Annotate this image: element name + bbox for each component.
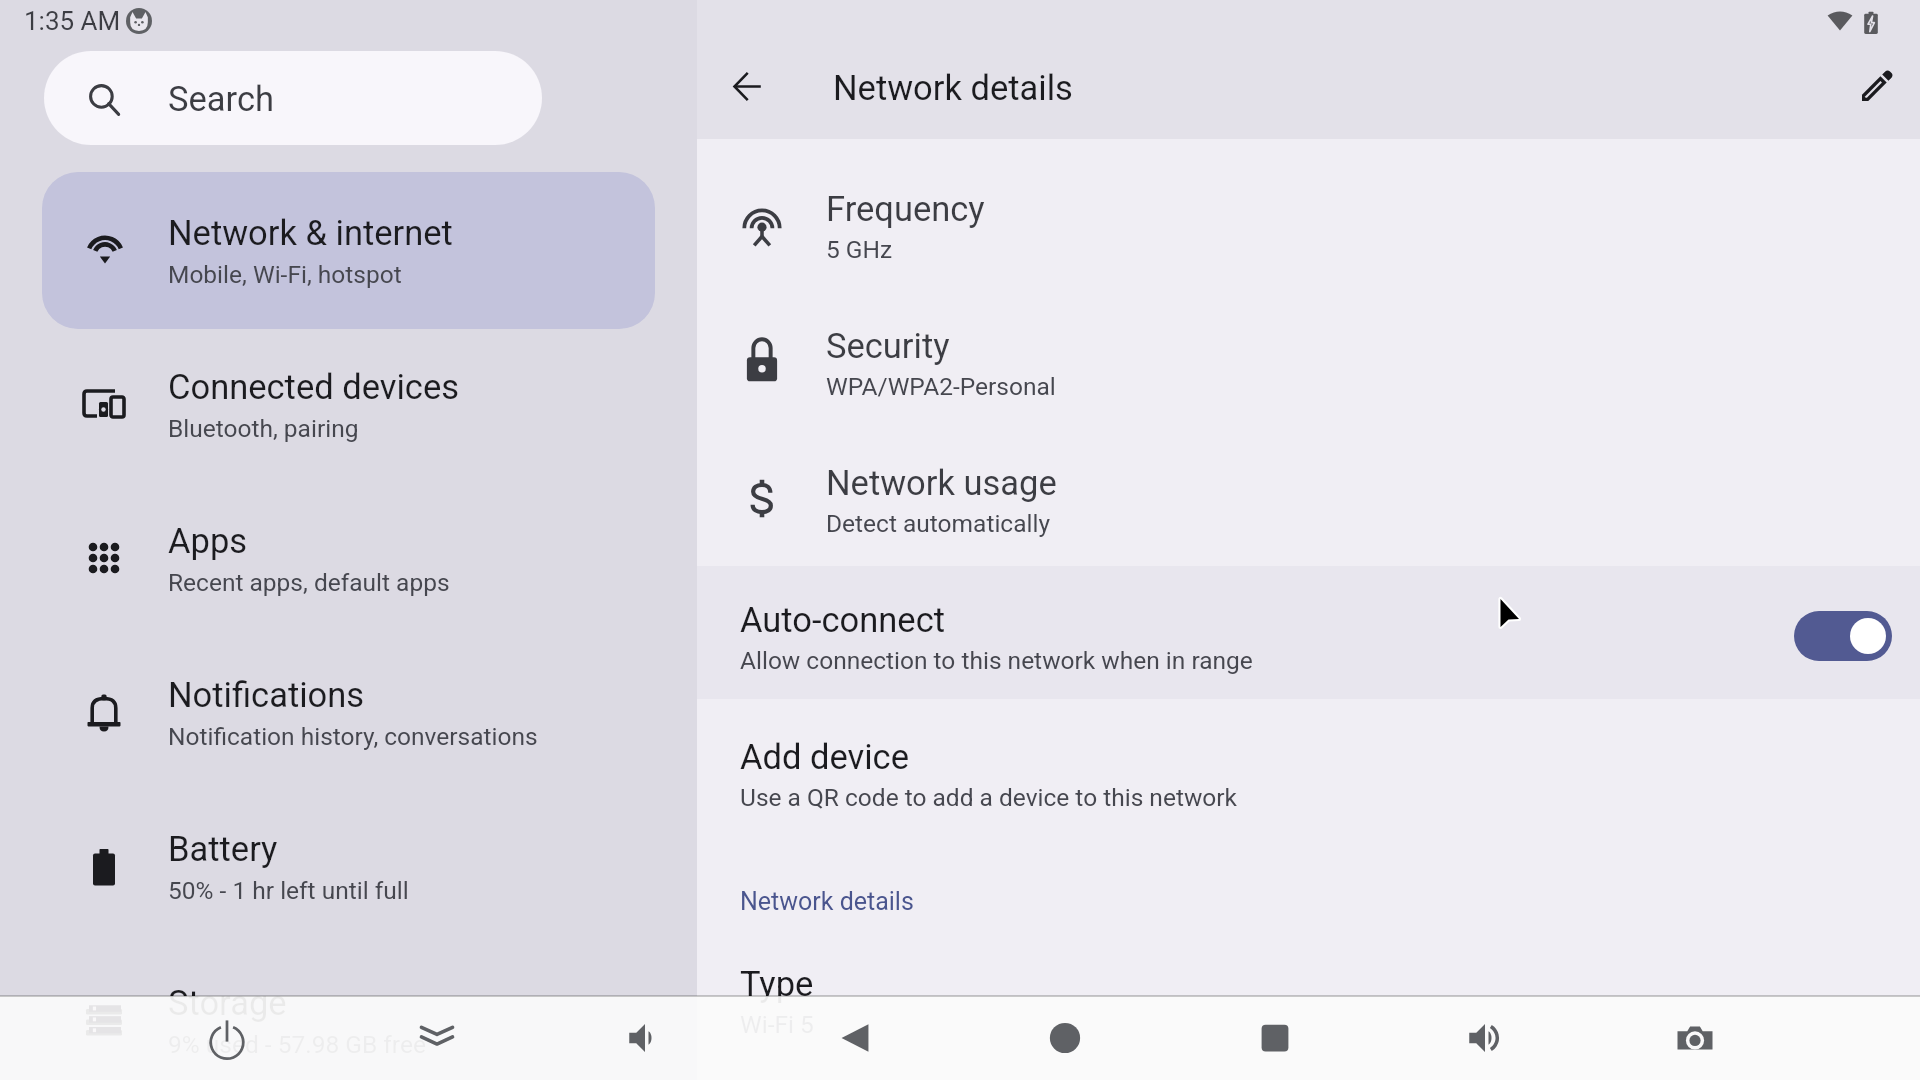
button[interactable]: Back <box>813 996 897 1080</box>
staticText: Network & internet <box>168 213 453 253</box>
staticText: Wi-Fi 5 <box>740 1010 814 1039</box>
staticText: 1:35 AM <box>24 6 121 36</box>
button[interactable]: Search <box>44 51 542 145</box>
button[interactable]: Network details <box>740 880 920 920</box>
button[interactable]: Collapse <box>395 996 479 1080</box>
staticText: Allow connection to this network when in… <box>740 646 1253 675</box>
staticText: Connected devices <box>168 367 459 407</box>
button[interactable]: Auto-connect <box>697 566 1920 699</box>
staticText: Search <box>168 79 274 119</box>
staticText: 5 GHz <box>826 235 893 264</box>
button[interactable]: Auto-connect, on <box>1794 611 1892 661</box>
button[interactable]: Recents <box>1233 996 1317 1080</box>
button[interactable]: Frequency <box>697 150 1920 270</box>
staticText: Type <box>740 964 814 1004</box>
button[interactable]: Edit <box>1841 50 1913 122</box>
button[interactable]: Volume up <box>1443 996 1527 1080</box>
staticText: Network details <box>740 887 914 916</box>
staticText: Auto-connect <box>740 600 945 640</box>
button[interactable]: Connected devices <box>42 326 655 483</box>
staticText: Storage <box>168 983 287 1023</box>
staticText: Detect automatically <box>826 509 1051 538</box>
button[interactable]: Screenshot <box>1653 996 1737 1080</box>
staticText: Use a QR code to add a device to this ne… <box>740 783 1238 812</box>
staticText: Add device <box>740 737 909 777</box>
staticText: 9% used - 57.98 GB free <box>168 1030 426 1059</box>
button[interactable]: Storage <box>42 942 655 1080</box>
staticText: Mobile, Wi-Fi, hotspot <box>168 260 402 289</box>
staticText: Bluetooth, pairing <box>168 414 359 443</box>
staticText: Battery <box>168 829 278 869</box>
button[interactable]: Network & internet <box>42 172 655 329</box>
button[interactable]: Back <box>712 51 783 122</box>
staticText: Frequency <box>826 189 985 229</box>
button[interactable]: Battery <box>42 788 655 945</box>
staticText: Network usage <box>826 463 1057 503</box>
button[interactable]: Menu <box>63 996 147 1080</box>
button[interactable]: Network usage <box>697 424 1920 544</box>
button[interactable]: Notifications <box>42 634 655 791</box>
button[interactable]: Home <box>1023 996 1107 1080</box>
button[interactable]: Apps <box>42 480 655 637</box>
staticText: Network details <box>833 68 1073 108</box>
button[interactable]: Add device <box>697 716 1920 831</box>
staticText: Apps <box>168 521 248 561</box>
staticText: 50% - 1 hr left until full <box>168 876 409 905</box>
staticText: Security <box>826 326 950 366</box>
button[interactable]: Volume down <box>603 996 687 1080</box>
staticText: WPA/WPA2-Personal <box>826 372 1056 401</box>
staticText: Notification history, conversations <box>168 722 538 751</box>
staticText: Recent apps, default apps <box>168 568 450 597</box>
staticText: Notifications <box>168 675 365 715</box>
button[interactable]: Power <box>185 996 269 1080</box>
button[interactable]: Security <box>697 287 1920 407</box>
